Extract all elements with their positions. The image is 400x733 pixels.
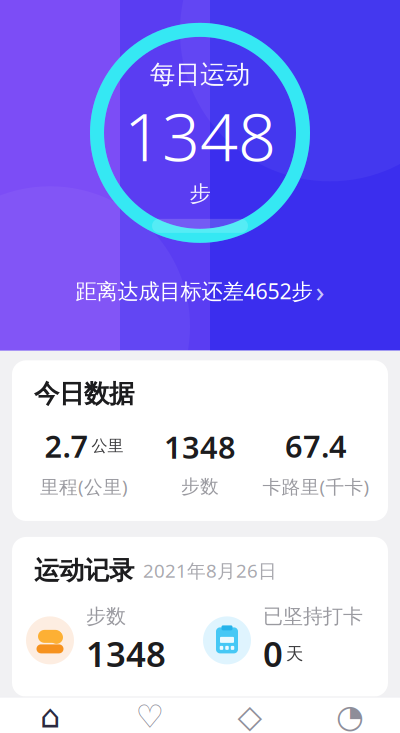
staticText: 已坚持打卡 xyxy=(263,604,363,629)
staticText: ◇ xyxy=(237,698,262,733)
button[interactable]: ♡ xyxy=(100,697,200,733)
button[interactable]: ◇ xyxy=(200,697,300,733)
staticText: 每日运动 xyxy=(150,59,250,90)
staticText: 2.7 xyxy=(44,425,88,466)
staticText: 卡路里(千卡) xyxy=(262,474,369,499)
staticText: 67.4 xyxy=(285,425,347,466)
button[interactable]: ◔ xyxy=(300,697,400,733)
staticText: ⌂ xyxy=(40,698,60,733)
staticText: 1348 xyxy=(86,631,166,677)
staticText: 0 xyxy=(263,631,283,677)
staticText: 天 xyxy=(286,643,303,664)
staticText: 公里 xyxy=(91,436,123,456)
staticText: 1348 xyxy=(164,426,236,467)
staticText: 1348 xyxy=(124,91,276,179)
staticText: 步 xyxy=(189,181,210,207)
staticText: 2021年8月26日 xyxy=(143,558,277,583)
staticText: 步数 xyxy=(86,604,126,629)
staticText: 里程(公里) xyxy=(40,474,128,499)
staticText: 距离达成目标还差4652步 xyxy=(75,277,312,305)
button[interactable]: ⌂ xyxy=(0,697,100,733)
staticText: 步数 xyxy=(181,475,219,498)
staticText: 运动记录 xyxy=(34,555,134,586)
staticText: ◔ xyxy=(336,698,364,733)
button[interactable]: 距离达成目标还差4652步 xyxy=(59,265,340,316)
staticText: › xyxy=(315,271,324,310)
staticText: ♡ xyxy=(135,698,164,733)
staticText: 今日数据 xyxy=(34,378,134,409)
